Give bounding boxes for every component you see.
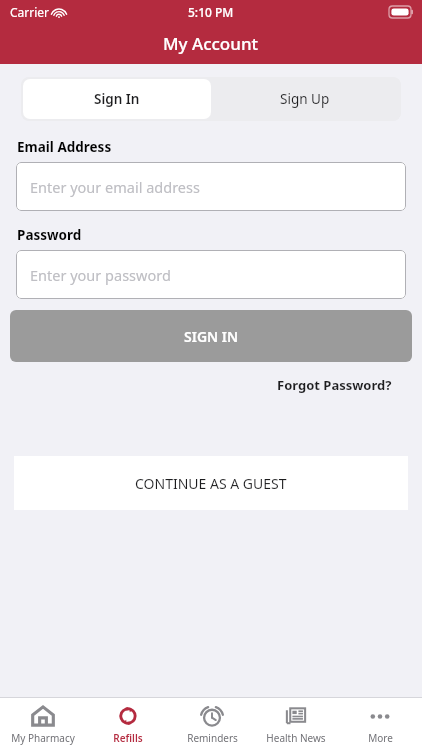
staticText: My Account [163,32,259,55]
staticText: Carrier [10,4,50,20]
staticText: CONTINUE AS A GUEST [135,474,287,493]
staticText: Enter your password [30,265,171,285]
button[interactable]: My Pharmacy [0,698,85,750]
staticText: Email Address [17,138,112,156]
staticText: More [368,731,393,745]
staticText: My Pharmacy [11,731,75,745]
button[interactable]: SIGN IN [10,310,412,362]
button[interactable]: Reminders [170,698,254,750]
staticText: Enter your email address [30,177,200,197]
button[interactable]: Enter your email address [16,162,406,211]
staticText: Forgot Password? [277,376,392,394]
staticText: 5:10 PM [188,4,234,20]
staticText: Reminders [187,731,238,745]
button[interactable]: Sign In [23,79,211,119]
staticText: Sign In [94,90,140,108]
button[interactable]: CONTINUE AS A GUEST [14,456,408,510]
staticText: Sign Up [280,90,330,108]
button[interactable]: More [338,698,422,750]
staticText: Health News [266,731,326,745]
staticText: Refills [113,731,143,745]
staticText: SIGN IN [184,327,239,346]
button[interactable]: Forgot Password? [273,373,396,397]
staticText: Password [17,226,82,244]
button[interactable]: Refills [85,698,170,750]
button[interactable]: Sign Up [211,79,399,119]
button[interactable]: Enter your password [16,250,406,299]
button[interactable]: Health News [254,698,338,750]
